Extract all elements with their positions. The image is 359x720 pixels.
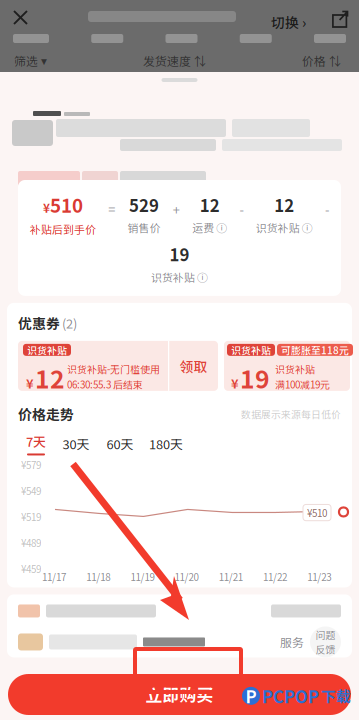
staticText: 识货补贴 [27, 343, 67, 357]
staticText: 510 [50, 191, 83, 218]
staticText: ¥ [231, 374, 239, 392]
staticText: 06:30:55.3 后结束 [67, 377, 143, 391]
staticText: 筛选 ▾ [14, 52, 47, 69]
staticText: 问题 [315, 628, 335, 642]
staticText: - [239, 200, 243, 218]
staticText: 12 [274, 192, 294, 217]
staticText: 识货补贴 [275, 362, 315, 376]
staticText: ¥519 [21, 509, 41, 524]
staticText: 补贴后到手价 [30, 221, 96, 237]
staticText: 11/23 [307, 569, 331, 584]
staticText: 切换 › [271, 12, 306, 32]
staticText: 19 [240, 360, 270, 396]
staticText: 发货速度 ⇅ [143, 52, 206, 69]
staticText: 运费 ⓘ [192, 220, 227, 235]
staticText: 180天 [149, 434, 183, 453]
staticText: ¥ [26, 374, 34, 392]
staticText: 19 [169, 242, 189, 266]
staticText: 数据展示来源每日低价 [241, 407, 341, 421]
staticText: = [108, 200, 115, 218]
staticText: 价格 ⇅ [302, 52, 341, 69]
staticText: PCPOP [262, 684, 319, 708]
staticText: 30天 [62, 434, 89, 453]
staticText: 11/19 [130, 569, 154, 584]
staticText: 11/17 [42, 569, 66, 584]
staticText: 11/21 [219, 569, 243, 584]
button[interactable]: 立即购买 [8, 674, 351, 715]
button[interactable]: Close [4, 1, 37, 34]
button[interactable]: 7天 [18, 432, 54, 455]
staticText: 销售价 [128, 220, 161, 235]
button[interactable]: 30天 [54, 434, 98, 453]
staticText: 下载 [321, 685, 351, 706]
staticText: (2) [62, 314, 77, 332]
staticText: 11/18 [86, 569, 110, 584]
staticText: 60天 [106, 434, 133, 453]
staticText: 529 [129, 192, 159, 217]
staticText: 领取 [179, 356, 207, 376]
staticText: 识货补贴 ⓘ [151, 269, 208, 285]
staticText: 识货补贴 ⓘ [256, 220, 313, 235]
staticText: ¥579 [21, 457, 41, 472]
button[interactable]: 问题 [310, 626, 341, 657]
staticText: 可膨胀至118元 [281, 343, 349, 357]
staticText: ¥459 [21, 561, 41, 576]
staticText: 识货补贴 [231, 343, 271, 357]
staticText: 12 [35, 360, 65, 396]
button[interactable]: Share [327, 5, 354, 33]
staticText: 满100减19元 [275, 377, 330, 391]
button[interactable]: 60天 [98, 434, 142, 453]
button[interactable]: 领取 [169, 341, 218, 391]
staticText: ¥ [43, 199, 50, 216]
staticText: 识货补贴-无门槛使用 [67, 362, 160, 376]
staticText: 立即购买 [145, 682, 213, 707]
button[interactable]: 180天 [142, 434, 190, 453]
staticText: 优惠券 [18, 313, 60, 333]
staticText: ¥489 [21, 535, 41, 550]
staticText: - [325, 200, 329, 218]
staticText: ¥549 [21, 483, 41, 498]
staticText: ¥510 [307, 505, 327, 520]
staticText: 11/22 [263, 569, 287, 584]
staticText: 11/20 [175, 569, 199, 584]
staticText: 12 [200, 192, 220, 217]
staticText: 价格走势 [18, 404, 74, 424]
staticText: + [173, 200, 180, 218]
staticText: 7天 [26, 432, 46, 450]
staticText: 服务 [280, 633, 304, 650]
staticText: 反馈 [315, 642, 335, 656]
button[interactable]: 切换 › [266, 7, 311, 37]
staticText: P [245, 684, 256, 708]
